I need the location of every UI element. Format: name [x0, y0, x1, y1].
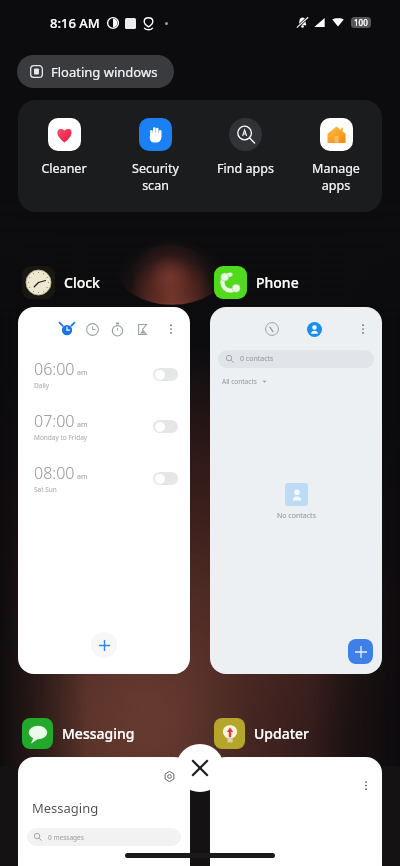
staticText: Updater	[254, 724, 310, 743]
button[interactable]: Cleaner	[20, 100, 108, 212]
staticText: 06:00	[34, 358, 75, 380]
staticText: 08:00	[34, 462, 75, 484]
staticText: Security scan	[132, 160, 179, 193]
button[interactable]: Toggle alarm	[153, 420, 178, 433]
staticText: am	[77, 420, 88, 430]
staticText: Messaging	[62, 724, 135, 743]
staticText: 0 messages	[48, 833, 84, 842]
staticText: 0 contacts	[240, 354, 274, 364]
staticText: am	[77, 368, 88, 378]
staticText: Sat Sun	[34, 485, 57, 494]
staticText: 100	[354, 17, 368, 28]
button[interactable]: Toggle alarm	[153, 472, 178, 485]
button[interactable]: Security scan	[111, 100, 199, 212]
button[interactable]: More options	[210, 757, 382, 866]
staticText: Floating windows	[51, 63, 158, 81]
staticText: Daily	[34, 381, 50, 390]
staticText: Phone	[256, 273, 299, 292]
button[interactable]: Toggle alarm	[153, 368, 178, 381]
button[interactable]: 0 messages	[27, 828, 181, 846]
button[interactable]: Close all	[176, 744, 224, 792]
staticText: 8:16 AM	[50, 14, 100, 32]
button[interactable]: Add contact	[348, 639, 373, 664]
button[interactable]: More options	[360, 781, 372, 793]
button[interactable]: Floating windows	[17, 55, 174, 88]
staticText: Clock	[64, 273, 100, 292]
staticText: Monday to Friday	[34, 433, 88, 442]
staticText: Manage apps	[312, 160, 360, 193]
button[interactable]: 0 contacts	[210, 307, 382, 674]
staticText: All contacts	[222, 377, 257, 386]
staticText: No contacts	[277, 511, 316, 521]
button[interactable]: Add alarm	[91, 632, 117, 658]
button[interactable]: 06:00	[18, 307, 190, 674]
staticText: am	[77, 472, 88, 482]
button[interactable]: Find apps	[201, 100, 289, 212]
staticText: 07:00	[34, 410, 75, 432]
staticText: Messaging	[32, 799, 99, 817]
button[interactable]: 0 contacts	[218, 350, 374, 368]
button[interactable]: Manage apps	[292, 100, 380, 212]
button[interactable]: Messaging	[18, 757, 190, 866]
staticText: Find apps	[217, 160, 274, 177]
staticText: Cleaner	[41, 160, 87, 177]
